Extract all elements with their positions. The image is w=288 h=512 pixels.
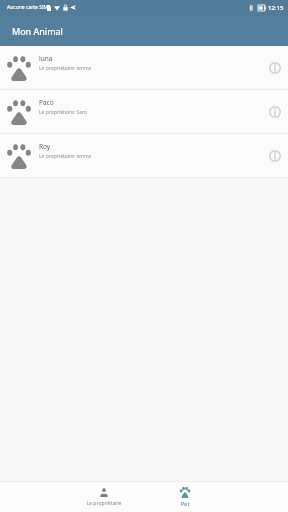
staticText: 12:15 (268, 4, 284, 12)
button[interactable]: Info (267, 104, 283, 120)
staticText: Mon Animal (12, 25, 63, 37)
button[interactable]: Roy (0, 134, 288, 178)
staticText: Aucune carte SIM (7, 4, 49, 11)
button[interactable]: Info (267, 148, 283, 164)
staticText: Paco (39, 98, 54, 107)
button[interactable]: luna (0, 46, 288, 90)
button[interactable]: Paco (0, 90, 288, 134)
staticText: Pet (163, 500, 207, 508)
staticText: luna (39, 54, 53, 63)
staticText: Roy (39, 142, 51, 151)
button[interactable]: Le propriétaire (82, 482, 126, 512)
staticText: Le propriétaire: Sam (39, 109, 87, 116)
staticText: Le propriétaire (82, 500, 126, 507)
button[interactable]: Pet (163, 482, 207, 512)
staticText: Le propriétaire: emma (39, 65, 92, 72)
button[interactable]: Info (267, 60, 283, 76)
staticText: Le propriétaire: emma (39, 153, 92, 160)
